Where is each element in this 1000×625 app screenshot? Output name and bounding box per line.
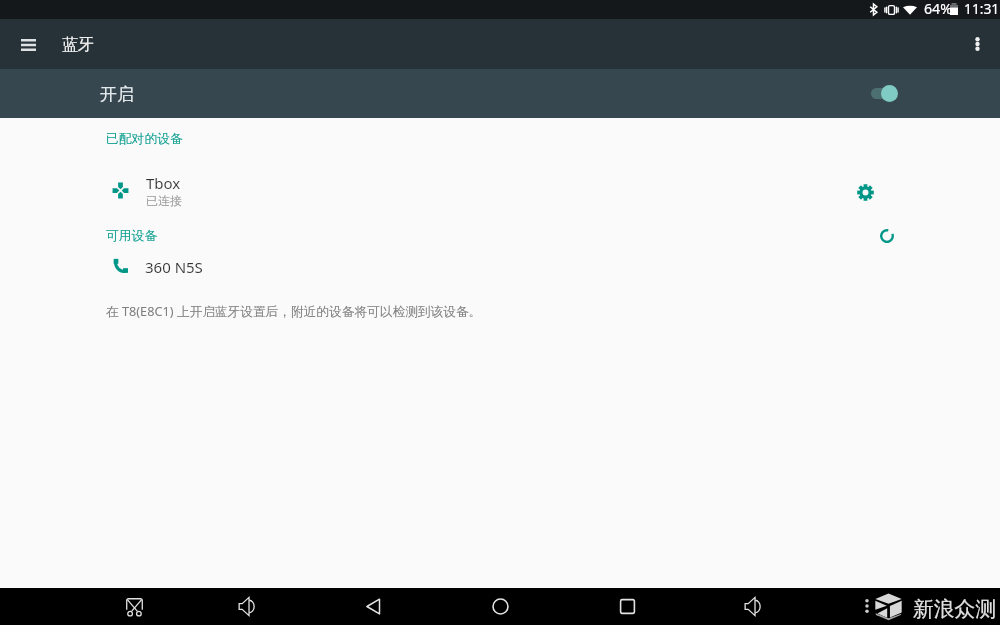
button[interactable]: Open navigation drawer: [10, 27, 46, 63]
staticText: 11:31: [964, 0, 1000, 18]
button[interactable]: Screenshot: [117, 589, 151, 623]
staticText: 蓝牙: [62, 35, 94, 55]
button[interactable]: Home: [483, 589, 517, 623]
button[interactable]: Recents: [610, 589, 644, 623]
staticText: 开启: [100, 84, 134, 105]
button[interactable]: 开启: [0, 69, 1000, 118]
staticText: 可用设备: [106, 228, 158, 244]
staticText: 新浪众测: [913, 596, 997, 622]
staticText: 64%: [924, 0, 953, 18]
button[interactable]: Device settings: [850, 177, 880, 207]
button[interactable]: Back: [356, 589, 390, 623]
button[interactable]: Tbox: [0, 166, 1000, 214]
button[interactable]: Volume up: [736, 589, 770, 623]
staticText: Tbox: [146, 173, 181, 193]
staticText: 360 N5S: [145, 257, 203, 277]
staticText: 在 T8(E8C1) 上开启蓝牙设置后，附近的设备将可以检测到该设备。: [106, 302, 482, 319]
button[interactable]: Volume down: [230, 589, 264, 623]
button[interactable]: More options: [959, 26, 995, 62]
staticText: 已连接: [146, 193, 182, 208]
button[interactable]: 360 N5S: [0, 251, 1000, 283]
staticText: 已配对的设备: [106, 131, 183, 147]
